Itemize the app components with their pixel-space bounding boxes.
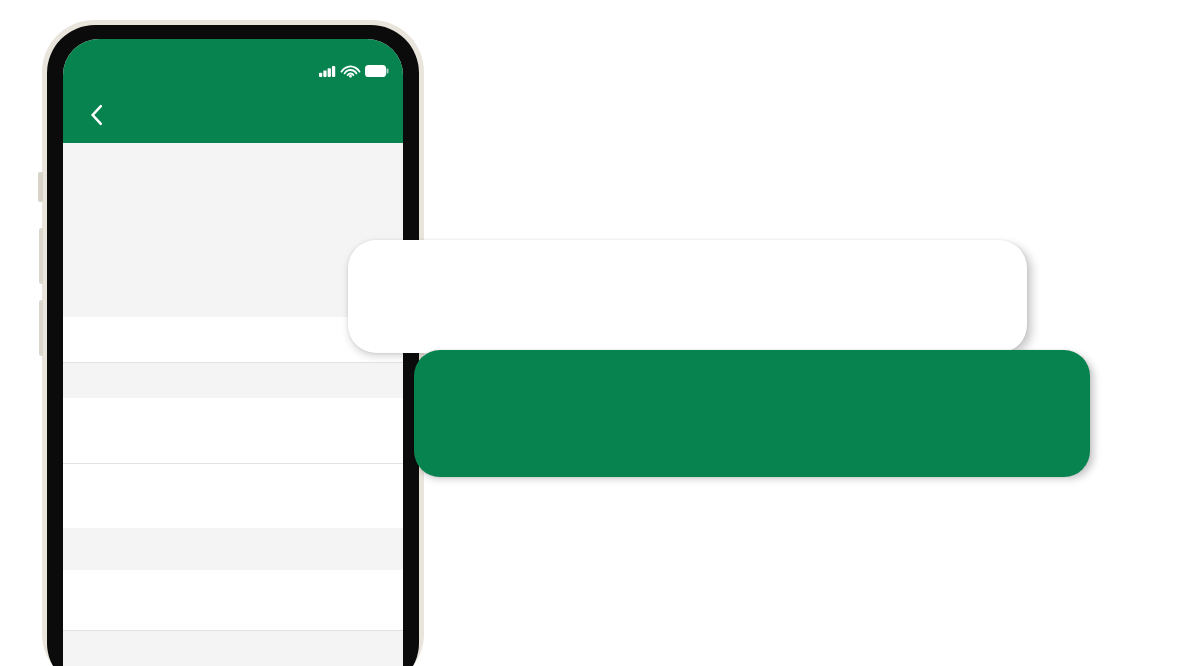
button[interactable]: Back xyxy=(75,93,119,137)
button[interactable] xyxy=(63,463,403,528)
button[interactable] xyxy=(414,350,1090,477)
button[interactable] xyxy=(63,317,403,362)
button[interactable] xyxy=(348,240,1027,353)
